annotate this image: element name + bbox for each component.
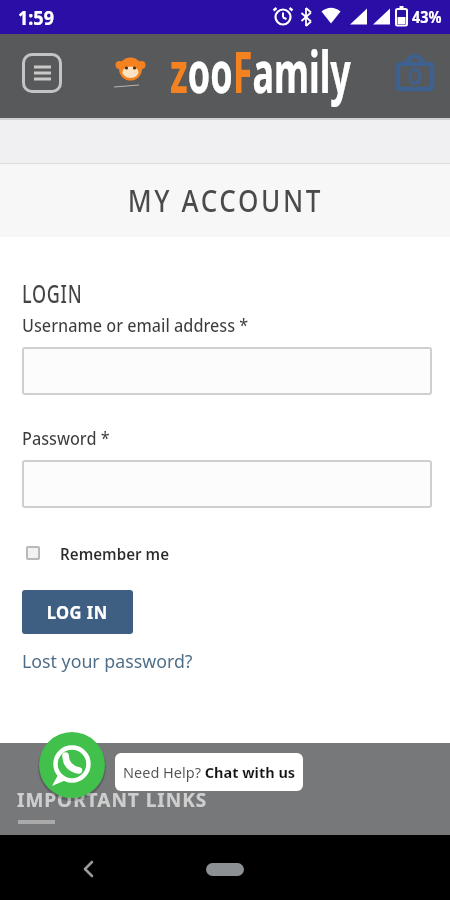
button[interactable] bbox=[206, 863, 244, 876]
staticText: LOG IN bbox=[47, 600, 108, 625]
staticText: Remember me bbox=[60, 542, 169, 564]
button[interactable]: LOG IN bbox=[22, 590, 133, 634]
button[interactable]: Need Help? Chat with us bbox=[115, 753, 303, 791]
button[interactable]: Lost your password? bbox=[22, 648, 200, 673]
staticText: LOGIN bbox=[22, 276, 82, 310]
button[interactable] bbox=[22, 347, 432, 395]
staticText: 1:59 bbox=[18, 4, 54, 31]
button[interactable] bbox=[22, 53, 62, 93]
staticText: Password * bbox=[22, 426, 110, 451]
staticText: zooFamily bbox=[170, 32, 351, 110]
staticText: IMPORTANT LINKS bbox=[17, 787, 208, 813]
button[interactable] bbox=[22, 460, 432, 508]
button[interactable] bbox=[396, 54, 434, 92]
staticText: MY ACCOUNT bbox=[128, 180, 323, 221]
button[interactable] bbox=[39, 732, 105, 798]
button[interactable]: Remember me bbox=[26, 542, 179, 564]
staticText: Username or email address * bbox=[22, 313, 249, 338]
staticText: 43% bbox=[412, 6, 442, 28]
staticText: Need Help? Chat with us bbox=[123, 762, 296, 782]
